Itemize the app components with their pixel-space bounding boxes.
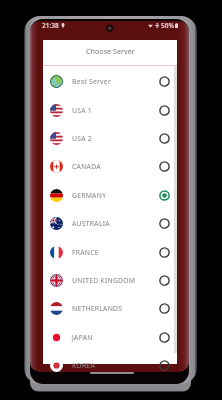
staticText: UNITED KINGDOM [72,276,136,285]
button[interactable]: Best Server [43,67,177,95]
staticText: Best Server [72,77,111,86]
staticText: USA 1 [72,106,92,115]
button[interactable]: Choose Server [43,40,177,65]
button[interactable]: CANADA [43,152,177,180]
staticText: FRANCE [72,248,99,257]
button[interactable]: USA 1 [43,96,177,124]
button[interactable]: AUSTRALIA [43,209,177,237]
staticText: Choose Server [86,46,135,56]
button[interactable]: KOREA [43,351,177,379]
staticText: 56% [161,21,174,30]
button[interactable]: USA 2 [43,124,177,152]
staticText: GERMANY [72,191,107,200]
staticText: NETHERLANDS [72,304,123,313]
staticText: JAPAN [72,333,93,342]
staticText: KOREA [72,361,95,370]
staticText: 21:38 [42,21,59,30]
button[interactable]: GERMANY [43,181,177,209]
staticText: AUSTRALIA [72,219,110,228]
staticText: CANADA [72,162,101,171]
button[interactable]: FRANCE [43,238,177,266]
button[interactable]: UNITED KINGDOM [43,266,177,294]
button[interactable]: JAPAN [43,323,177,351]
staticText: USA 2 [72,134,92,143]
button[interactable]: NETHERLANDS [43,294,177,322]
